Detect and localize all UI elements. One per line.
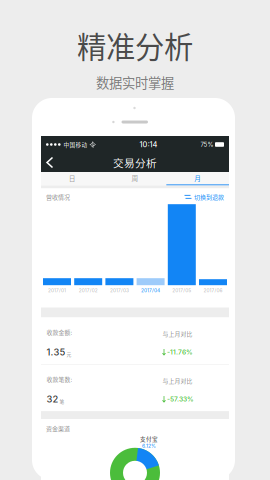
staticText: 切换到退款 [194, 192, 224, 201]
button[interactable]: 日 [41, 172, 104, 185]
staticText: 2017/06 [203, 288, 222, 293]
staticText: 月 [194, 173, 201, 183]
staticText: 2017/02 [79, 288, 98, 293]
staticText: 75% [200, 141, 213, 148]
staticText: 与上月对比 [162, 377, 192, 385]
staticText: 10:14 [140, 140, 158, 149]
staticText: 令 [90, 140, 97, 149]
staticText: 元 [66, 351, 71, 358]
button[interactable]: 切换到退款 [184, 192, 224, 201]
staticText: 2017/01 [48, 288, 66, 293]
staticText: -11.76% [167, 348, 193, 356]
staticText: 2017/04 [141, 288, 160, 293]
staticText: 1.35 [46, 346, 65, 358]
staticText: 数据实时掌握 [96, 72, 174, 92]
staticText: 收款笔数: [46, 375, 72, 383]
staticText: 资金渠道 [46, 424, 70, 433]
staticText: 营收情况 [46, 192, 70, 201]
staticText: 收款金额: [46, 328, 72, 336]
staticText: 笔 [59, 398, 64, 405]
staticText: 6.12% [142, 443, 156, 449]
staticText: 交易分析 [113, 155, 157, 170]
staticText: 周 [131, 173, 138, 183]
button[interactable]: Back [41, 153, 58, 172]
staticText: 2017/05 [172, 288, 191, 293]
staticText: 与上月对比 [162, 329, 192, 338]
staticText: 支付宝 [140, 435, 158, 443]
staticText: 32 [46, 393, 58, 405]
staticText: -57.33% [167, 395, 194, 403]
staticText: 2017/03 [110, 288, 129, 293]
button[interactable]: 月 [166, 172, 229, 185]
staticText: 中国移动 [64, 140, 88, 148]
staticText: 日 [69, 173, 76, 183]
staticText: 精准分析 [77, 24, 193, 66]
button[interactable]: 周 [104, 172, 166, 185]
